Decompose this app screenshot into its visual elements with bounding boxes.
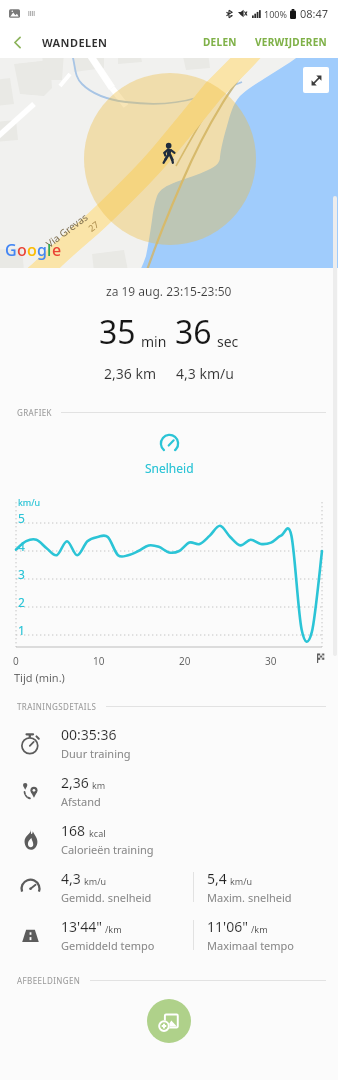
staticText: 2 — [18, 594, 25, 610]
button[interactable]: 168 — [0, 815, 338, 863]
staticText: 27 — [85, 218, 101, 234]
staticText: km/u — [230, 875, 253, 887]
staticText: AFBEELDINGEN — [17, 975, 81, 986]
staticText: 2,36 — [61, 773, 89, 792]
staticText: 08:47 — [300, 6, 329, 21]
button[interactable]: Snelheid — [0, 433, 338, 476]
staticText: 30 — [265, 654, 277, 668]
staticText: 2,36 km — [104, 364, 156, 383]
staticText: DELEN — [203, 35, 237, 49]
button[interactable]: DELEN — [197, 29, 243, 55]
button[interactable]: Afbeelding toevoegen — [147, 999, 191, 1043]
staticText: G — [5, 239, 17, 261]
staticText: 13'44" — [61, 917, 102, 936]
staticText: 0 — [13, 654, 19, 668]
staticText: 168 — [61, 821, 86, 840]
staticText: 5,4 — [207, 869, 227, 888]
staticText: /km — [251, 923, 268, 935]
staticText: TRAININGSDETAILS — [17, 701, 97, 712]
staticText: Afstand — [61, 794, 101, 809]
staticText: 5 — [18, 510, 25, 526]
staticText: Calorieën training — [61, 842, 154, 857]
staticText: 1 — [18, 622, 25, 638]
staticText: min — [141, 332, 167, 351]
staticText: g — [37, 239, 47, 261]
staticText: km/u — [18, 496, 41, 508]
staticText: WANDELEN — [42, 35, 108, 50]
staticText: kcal — [89, 827, 106, 839]
staticText: km — [92, 779, 106, 791]
staticText: Via Grevas — [43, 210, 90, 251]
staticText: Maximaal tempo — [207, 938, 295, 953]
staticText: 11'06" — [207, 917, 248, 936]
staticText: 20 — [179, 654, 191, 668]
staticText: 00:35:36 — [61, 725, 117, 744]
staticText: km/u — [84, 875, 107, 887]
staticText: Tijd (min.) — [14, 670, 65, 685]
staticText: l — [47, 239, 52, 261]
staticText: VERWIJDEREN — [255, 35, 328, 49]
staticText: 10 — [93, 654, 105, 668]
staticText: Snelheid — [145, 460, 194, 476]
button[interactable]: Kaart vergroten — [303, 67, 329, 93]
staticText: o — [17, 239, 27, 261]
button[interactable]: VERWIJDEREN — [249, 29, 338, 55]
staticText: sec — [217, 332, 239, 351]
staticText: Maxim. snelheid — [207, 890, 292, 905]
staticText: 36 — [175, 310, 212, 354]
staticText: Gemiddeld tempo — [61, 938, 155, 953]
button[interactable]: Terug — [0, 26, 34, 58]
staticText: 4 — [18, 538, 25, 554]
staticText: 3 — [18, 566, 25, 582]
staticText: e — [52, 239, 62, 261]
button[interactable]: 00:35:36 — [0, 719, 338, 767]
staticText: 4,3 — [61, 869, 81, 888]
staticText: za 19 aug. 23:15-23:50 — [106, 283, 232, 299]
staticText: /km — [105, 923, 122, 935]
staticText: 35 — [99, 310, 136, 354]
staticText: 4,3 km/u — [176, 364, 234, 383]
button[interactable]: 2,36 — [0, 767, 338, 815]
staticText: Gemidd. snelheid — [61, 890, 152, 905]
staticText: GRAFIEK — [17, 407, 52, 418]
staticText: 100% — [264, 8, 287, 20]
staticText: Duur training — [61, 746, 131, 761]
staticText: o — [27, 239, 37, 261]
